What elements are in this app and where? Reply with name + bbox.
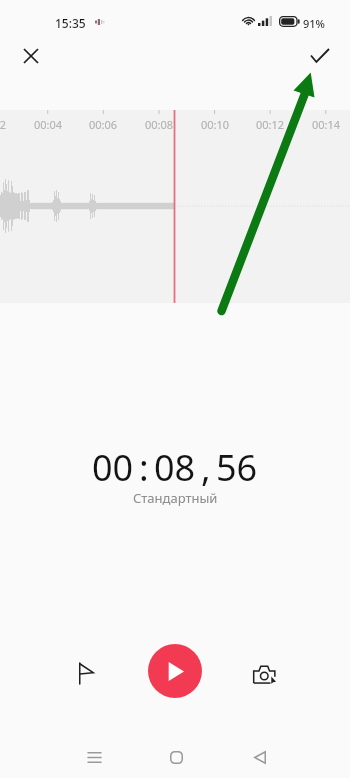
button[interactable]: Recent apps <box>69 732 119 778</box>
staticText: 00 <box>92 443 134 492</box>
staticText: : <box>139 443 149 492</box>
staticText: 91% <box>303 16 325 31</box>
staticText: 00:10 <box>190 117 240 132</box>
staticText: 00:06 <box>78 117 128 132</box>
button[interactable]: Back <box>235 732 285 778</box>
staticText: 00:08 <box>134 117 184 132</box>
staticText: 00:02 <box>0 117 17 132</box>
button[interactable]: Play <box>148 644 202 698</box>
staticText: , <box>201 443 211 492</box>
staticText: 56 <box>216 443 258 492</box>
staticText: 08 <box>154 443 196 492</box>
button[interactable]: Done <box>298 34 341 77</box>
staticText: 15:35 <box>55 15 86 31</box>
button[interactable]: Add flag marker <box>62 649 110 697</box>
staticText: 00:14 <box>301 117 350 132</box>
button[interactable]: Home <box>151 732 201 778</box>
button[interactable]: Close <box>9 34 52 77</box>
staticText: Стандартный <box>133 489 218 507</box>
button[interactable]: Camera <box>240 650 288 698</box>
staticText: 00:12 <box>245 117 295 132</box>
staticText: 00:04 <box>23 117 73 132</box>
